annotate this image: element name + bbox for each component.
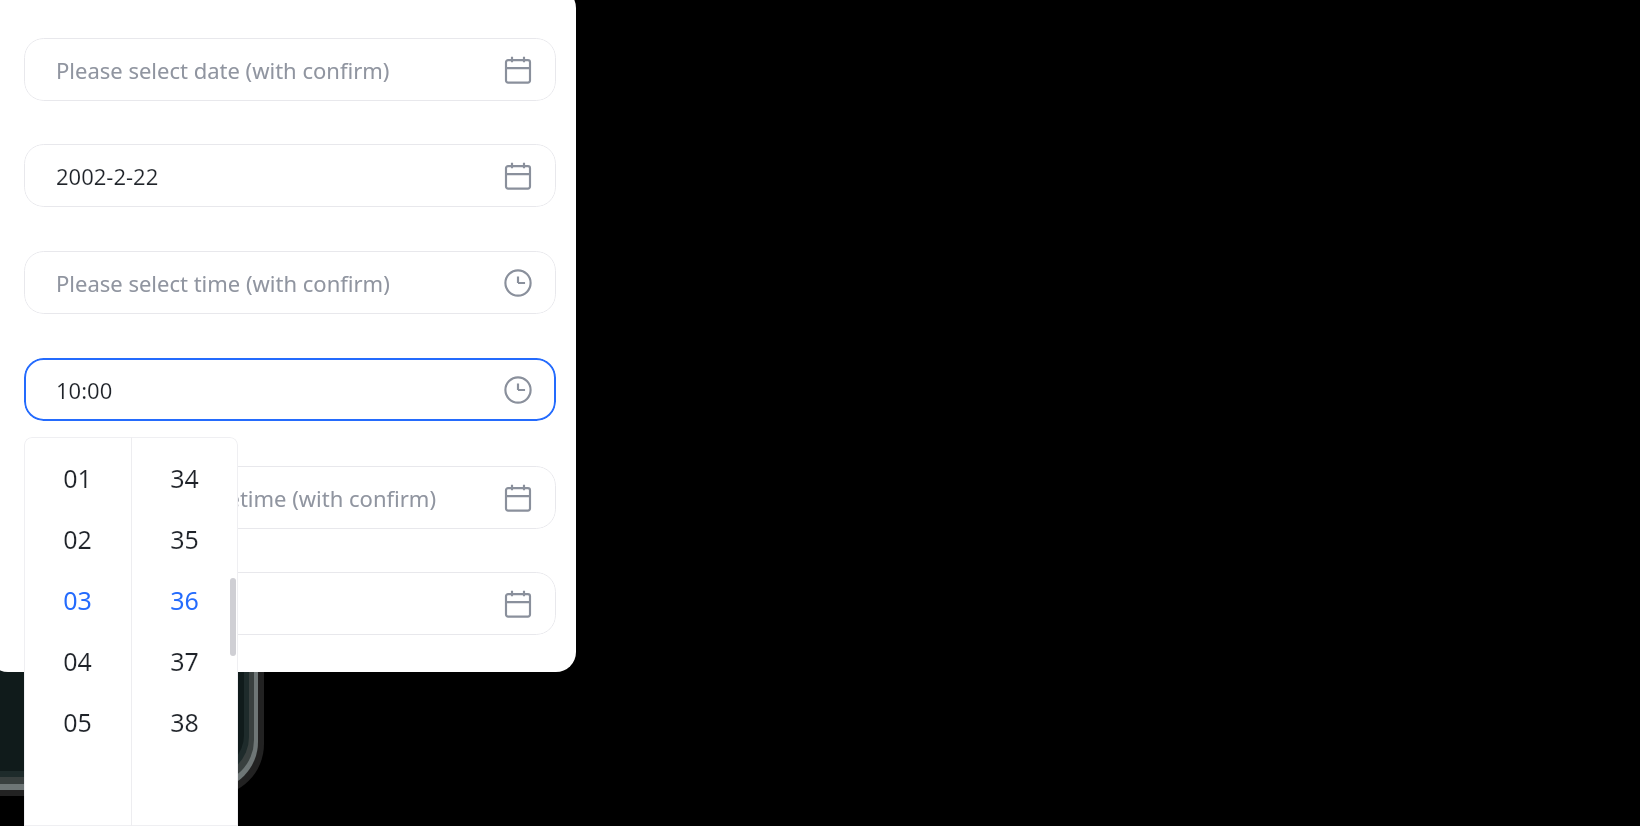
staticText: Please select datetime (with confirm) (56, 483, 436, 513)
button[interactable]: 2002-2-22 10:02 (24, 572, 556, 635)
button[interactable]: 01 (24, 457, 131, 499)
staticText: 04 (63, 644, 92, 678)
staticText: 37 (170, 644, 199, 678)
button[interactable]: Select time (500, 265, 536, 301)
button[interactable]: Select date (500, 480, 536, 516)
staticText: 2002-2-22 (56, 161, 159, 191)
staticText: Please select date (with confirm) (56, 55, 390, 85)
staticText: 34 (170, 461, 199, 495)
button[interactable]: Please select datetime (with confirm) (24, 466, 556, 529)
staticText: 38 (170, 705, 199, 739)
button[interactable]: Please select time (with confirm) (24, 251, 556, 314)
button[interactable]: 10:00 (24, 358, 556, 421)
button[interactable]: 38 (131, 701, 238, 743)
staticText: Please select time (with confirm) (56, 268, 390, 298)
button[interactable]: Please select date (with confirm) (24, 38, 556, 101)
staticText: 05 (63, 705, 92, 739)
button[interactable]: 36 (131, 579, 238, 621)
button[interactable]: 02 (24, 518, 131, 560)
staticText: 02 (63, 522, 92, 556)
button[interactable]: 35 (131, 518, 238, 560)
button[interactable]: 37 (131, 640, 238, 682)
staticText: 10:00 (56, 375, 113, 405)
button[interactable]: Select date (500, 586, 536, 622)
button[interactable]: Select date (500, 52, 536, 88)
staticText: 01 (63, 461, 92, 495)
button[interactable]: 04 (24, 640, 131, 682)
button[interactable]: 05 (24, 701, 131, 743)
staticText: 03 (63, 583, 92, 617)
button[interactable]: 03 (24, 579, 131, 621)
staticText: 2002-2-22 10:02 (56, 589, 221, 619)
button[interactable]: Select date (500, 158, 536, 194)
staticText: 35 (170, 522, 199, 556)
staticText: 36 (170, 583, 199, 617)
button[interactable]: 2002-2-22 (24, 144, 556, 207)
button[interactable]: Select time (500, 372, 536, 408)
button[interactable]: 34 (131, 457, 238, 499)
